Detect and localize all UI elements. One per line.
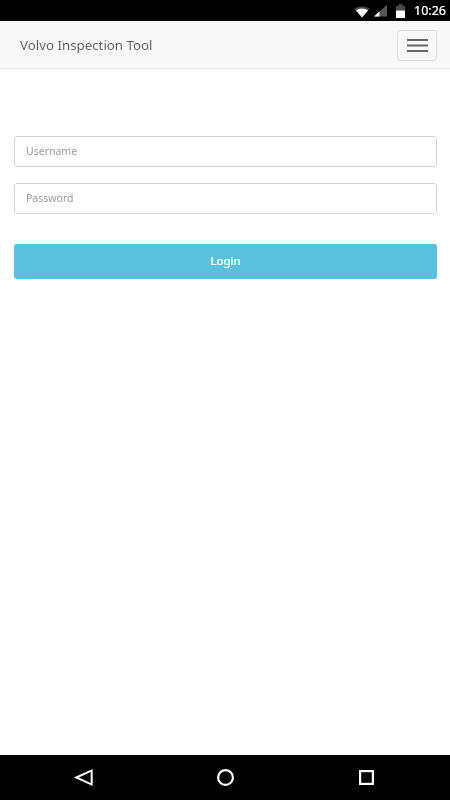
button[interactable]: Username bbox=[14, 136, 437, 167]
button[interactable]: Back bbox=[54, 755, 114, 800]
staticText: Volvo Inspection Tool bbox=[20, 36, 153, 54]
button[interactable]: Recent apps bbox=[336, 755, 396, 800]
staticText: Password bbox=[26, 191, 74, 205]
button[interactable]: Menu bbox=[397, 30, 437, 61]
staticText: 10:26 bbox=[414, 2, 446, 19]
button[interactable]: Login bbox=[14, 244, 437, 279]
staticText: Login bbox=[210, 253, 241, 269]
button[interactable]: Home bbox=[195, 755, 255, 800]
button[interactable]: Password bbox=[14, 183, 437, 214]
staticText: Username bbox=[26, 144, 78, 158]
